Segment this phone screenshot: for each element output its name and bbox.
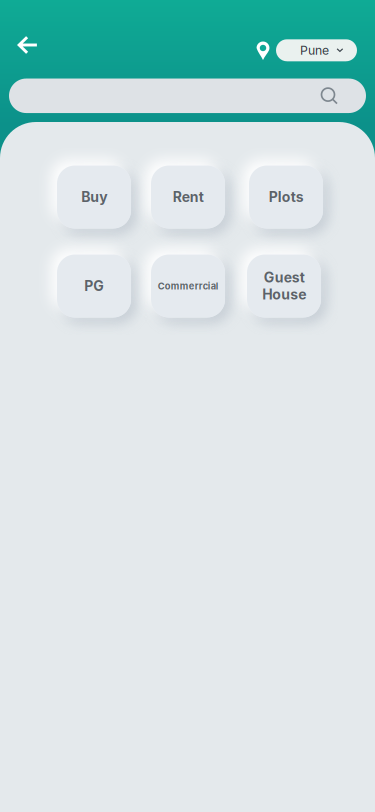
- button[interactable]: Guest House: [247, 254, 321, 317]
- button[interactable]: Current location: [247, 33, 279, 69]
- button[interactable]: PG: [57, 254, 131, 317]
- button[interactable]: Back: [4, 21, 52, 69]
- staticText: Pune: [300, 43, 329, 58]
- button[interactable]: Buy: [57, 165, 131, 228]
- staticText: PG: [84, 277, 104, 294]
- staticText: Plots: [268, 188, 303, 205]
- staticText: Commerrcial: [157, 280, 218, 292]
- button[interactable]: Plots: [249, 165, 323, 228]
- button[interactable]: Search: [9, 78, 366, 113]
- staticText: Guest House: [262, 269, 306, 303]
- button[interactable]: Pune: [276, 39, 357, 61]
- button[interactable]: Commerrcial: [151, 254, 225, 317]
- button[interactable]: Rent: [151, 165, 225, 228]
- staticText: Rent: [172, 188, 203, 205]
- staticText: Buy: [81, 188, 107, 205]
